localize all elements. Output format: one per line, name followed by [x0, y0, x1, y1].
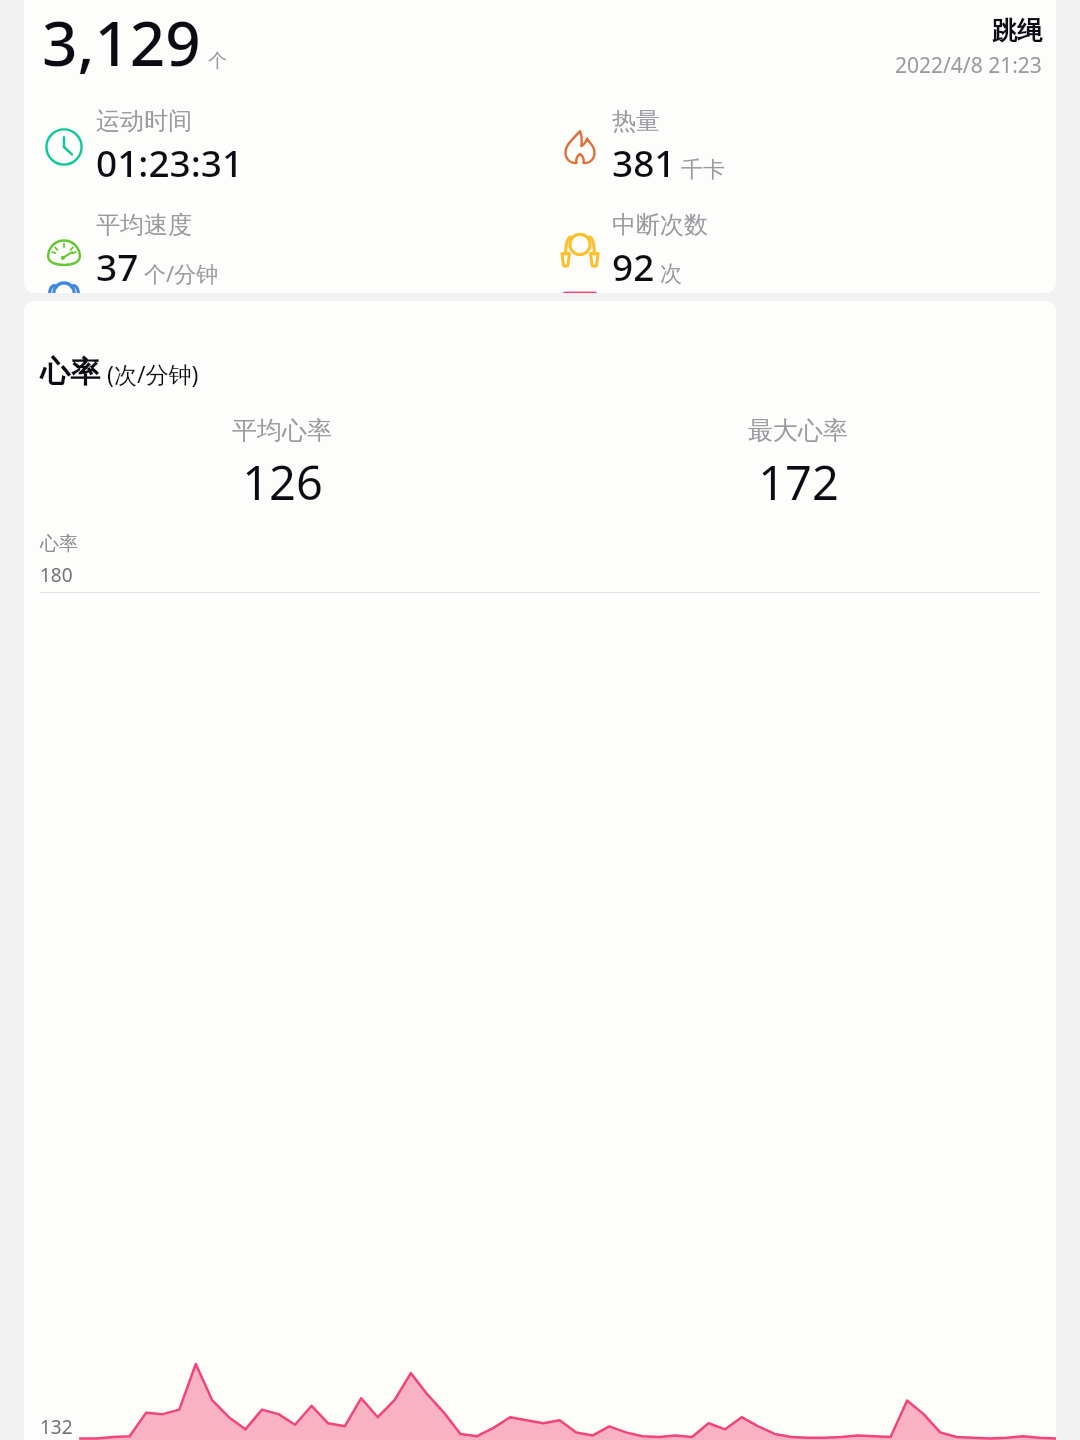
other: Duration — [42, 125, 86, 169]
staticText: 个/分钟 — [144, 258, 219, 288]
staticText: 最大心率 — [748, 415, 848, 446]
staticText: 个 — [208, 49, 227, 73]
staticText: 心率 — [40, 532, 78, 556]
staticText: 381 — [612, 137, 676, 187]
staticText: 次 — [660, 260, 682, 288]
staticText: 37 — [96, 241, 139, 291]
staticText: 心率 — [40, 353, 100, 391]
staticText: 2022/4/8 21:23 — [895, 51, 1042, 80]
other: Jump rope — [558, 229, 602, 273]
staticText: 180 — [40, 562, 73, 588]
staticText: 平均心率 — [232, 415, 332, 446]
staticText: 千卡 — [681, 156, 725, 184]
staticText: 热量 — [612, 106, 660, 136]
staticText: 3,129 — [42, 0, 201, 80]
button[interactable]: Average speed — [24, 210, 540, 291]
staticText: (次/分钟) — [107, 358, 199, 389]
staticText: 运动时间 — [96, 106, 192, 136]
other: Average speed — [42, 229, 86, 273]
staticText: 中断次数 — [612, 210, 708, 240]
button[interactable]: Duration — [24, 106, 540, 187]
staticText: 132 — [40, 1414, 73, 1440]
button[interactable]: Jump rope — [540, 210, 1056, 291]
staticText: 01:23:31 — [96, 137, 244, 187]
other: Calories — [558, 125, 602, 169]
button[interactable]: 最大心率 — [540, 415, 1056, 514]
button[interactable]: Calories — [540, 106, 1056, 187]
staticText: 172 — [758, 450, 839, 514]
staticText: 跳绳 — [992, 15, 1042, 46]
staticText: 126 — [242, 450, 323, 514]
staticText: 92 — [612, 241, 655, 291]
staticText: 平均速度 — [96, 210, 192, 240]
button[interactable]: 平均心率 — [24, 415, 540, 514]
